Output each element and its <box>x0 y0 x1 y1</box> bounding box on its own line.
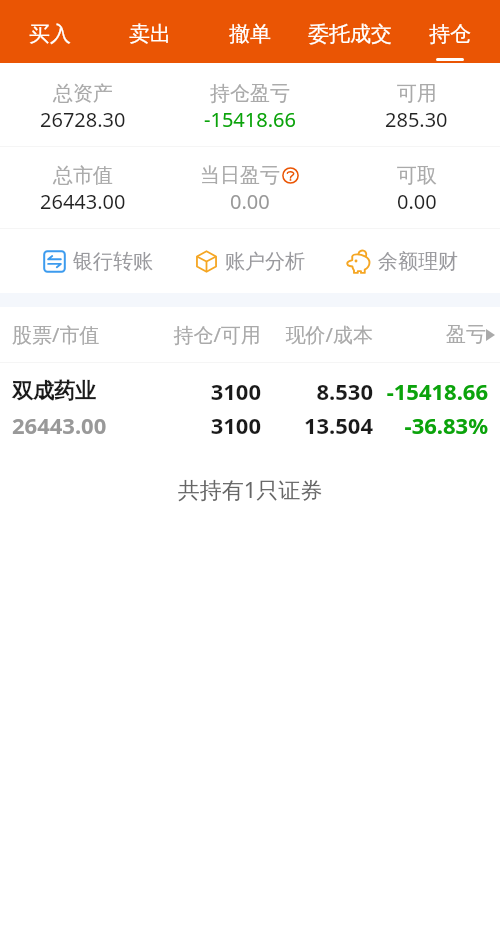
button[interactable]: 持仓 <box>400 0 500 63</box>
other: Help <box>282 167 299 184</box>
staticText: 持仓盈亏 <box>210 81 290 106</box>
staticText: 现价/成本 <box>261 321 373 348</box>
staticText: 总资产 <box>53 81 113 106</box>
staticText: 持仓 <box>429 21 471 47</box>
staticText: 26728.30 <box>40 106 126 133</box>
staticText: -15418.66 <box>373 376 488 406</box>
staticText: 持仓/可用 <box>136 321 261 348</box>
staticText: -15418.66 <box>204 106 296 133</box>
staticText: 285.30 <box>385 106 448 133</box>
staticText: 双成药业 <box>12 378 136 404</box>
staticText: 8.530 <box>261 376 373 406</box>
staticText: 可取 <box>397 163 437 188</box>
button[interactable]: 余额理财 <box>326 229 478 293</box>
staticText: 账户分析 <box>225 249 305 274</box>
staticText: 3100 <box>136 410 261 440</box>
staticText: 委托成交 <box>308 21 392 47</box>
button[interactable]: 双成药业 <box>0 376 500 440</box>
staticText: 卖出 <box>129 21 171 47</box>
staticText: 当日盈亏 <box>200 163 280 188</box>
staticText: 买入 <box>29 21 71 47</box>
staticText: 股票/市值 <box>12 321 136 348</box>
staticText: 可用 <box>397 81 437 106</box>
button[interactable]: 委托成交 <box>300 0 400 63</box>
button[interactable]: 卖出 <box>100 0 200 63</box>
staticText: 26443.00 <box>12 410 136 440</box>
staticText: 3100 <box>136 376 261 406</box>
staticText: 13.504 <box>261 410 373 440</box>
staticText: -36.83% <box>373 410 488 440</box>
button[interactable]: 买入 <box>0 0 100 63</box>
staticText: 26443.00 <box>40 188 126 215</box>
staticText: 银行转账 <box>73 249 153 274</box>
staticText: 共持有1只证券 <box>0 474 500 504</box>
staticText: 0.00 <box>397 188 437 215</box>
button[interactable]: 银行转账 <box>22 229 174 293</box>
staticText: 撤单 <box>229 21 271 47</box>
button[interactable]: 账户分析 <box>174 229 326 293</box>
staticText: 0.00 <box>230 188 270 215</box>
staticText: 盈亏 <box>446 322 486 347</box>
button[interactable]: 盈亏 <box>373 307 495 362</box>
button[interactable]: 撤单 <box>200 0 300 63</box>
staticText: 余额理财 <box>378 249 458 274</box>
staticText: 总市值 <box>53 163 113 188</box>
